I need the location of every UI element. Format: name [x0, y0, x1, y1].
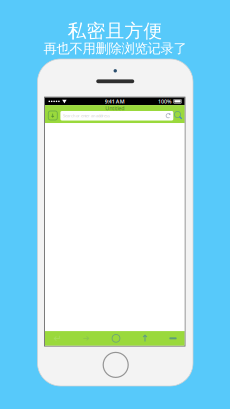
staticText: Search or enter an address — [63, 113, 110, 118]
button[interactable]: Bookmarks — [105, 331, 127, 346]
staticText: 100% — [158, 98, 172, 105]
button[interactable]: Tabs — [48, 111, 57, 120]
staticText: 9:41 AM — [105, 98, 125, 105]
button[interactable]: Search — [174, 111, 184, 121]
button[interactable]: Tabs — [162, 331, 184, 346]
staticText: 私密且方便 — [67, 19, 162, 42]
staticText: Untitled — [105, 105, 124, 112]
button[interactable]: Forward — [75, 331, 97, 346]
button[interactable]: Search or enter an address — [60, 111, 173, 120]
button[interactable]: Share — [134, 331, 156, 346]
button[interactable]: Back — [46, 331, 68, 346]
staticText: 再也不用删除浏览记录了 — [43, 40, 186, 57]
